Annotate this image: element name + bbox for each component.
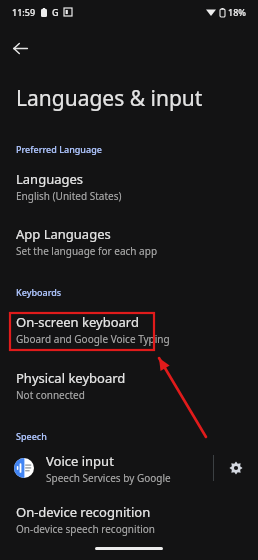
staticText: English (United States) <box>16 189 122 203</box>
staticText: Languages <box>16 170 84 188</box>
staticText: Voice input <box>46 452 114 470</box>
staticText: 18% <box>228 6 246 18</box>
button[interactable]: On-device recognition <box>0 497 258 542</box>
staticText: On-device speech recognition <box>16 522 156 536</box>
staticText: Speech Services by Google <box>46 471 171 485</box>
staticText: Gboard and Google Voice Typing <box>16 332 170 346</box>
button[interactable]: Voice input settings <box>214 448 258 488</box>
button[interactable]: On-screen keyboard <box>0 307 258 352</box>
button[interactable]: Languages <box>0 164 258 209</box>
staticText: On-screen keyboard <box>16 313 139 331</box>
staticText: Set the language for each app <box>16 244 158 258</box>
button[interactable]: Physical keyboard <box>0 363 258 408</box>
button[interactable]: Voice input <box>0 448 213 488</box>
staticText: Not connected <box>16 388 85 402</box>
button[interactable]: App Languages <box>0 219 258 264</box>
staticText: G <box>52 6 59 18</box>
staticText: On-device recognition <box>16 503 151 521</box>
staticText: Physical keyboard <box>16 369 126 387</box>
staticText: Preferred Language <box>16 143 102 155</box>
staticText: Speech <box>16 430 47 442</box>
staticText: 11:59 <box>12 6 36 18</box>
staticText: Languages & input <box>16 84 203 113</box>
staticText: App Languages <box>16 225 111 243</box>
button[interactable]: Back <box>5 33 35 63</box>
staticText: Keyboards <box>16 286 62 298</box>
